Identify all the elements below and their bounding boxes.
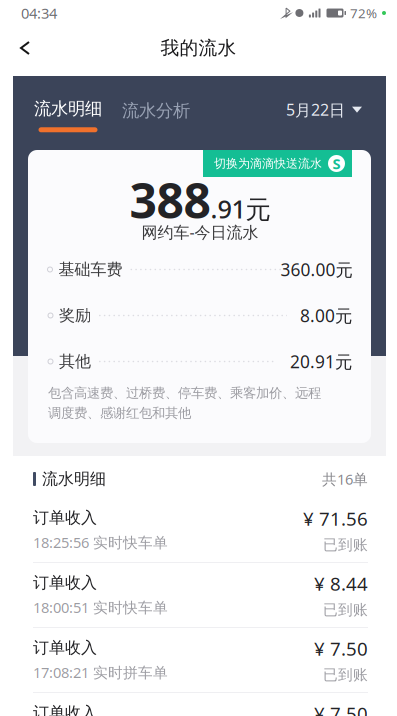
staticText: 共16单 <box>322 469 368 489</box>
button[interactable]: Back <box>0 26 50 70</box>
staticText: 我的流水 <box>160 36 236 59</box>
button[interactable]: 订单收入 <box>0 628 397 692</box>
staticText: ¥ 8.44 <box>314 571 368 596</box>
staticText: 流水分析 <box>122 100 190 121</box>
staticText: 388 <box>129 168 210 232</box>
staticText: 订单收入 <box>33 573 97 593</box>
staticText: 17:08:21 实时拼车单 <box>33 663 168 682</box>
staticText: 订单收入 <box>33 703 97 716</box>
staticText: 网约车-今日流水 <box>141 221 258 243</box>
staticText: 5月22日 <box>286 99 345 120</box>
button[interactable]: 5月22日 <box>286 99 362 132</box>
staticText: 切换为滴滴快送流水 <box>214 156 322 171</box>
staticText: 已到账 <box>323 536 368 554</box>
staticText: 04:34 <box>21 3 57 23</box>
staticText: S <box>332 154 340 173</box>
button[interactable]: 订单收入 <box>0 563 397 627</box>
button[interactable]: 订单收入 <box>0 693 397 716</box>
staticText: 订单收入 <box>33 508 97 528</box>
staticText: 360.00元 <box>280 258 352 281</box>
button[interactable]: 流水明细 <box>34 98 102 132</box>
staticText: 调度费、感谢红包和其他 <box>48 405 191 421</box>
button[interactable]: 切换为滴滴快送流水 <box>203 150 352 177</box>
staticText: 20.91元 <box>290 350 352 373</box>
button[interactable]: 流水分析 <box>122 100 190 132</box>
button[interactable]: 订单收入 <box>0 498 397 562</box>
staticText: 8.00元 <box>300 304 352 327</box>
staticText: 已到账 <box>323 601 368 619</box>
staticText: 18:25:56 实时快车单 <box>33 533 168 552</box>
staticText: ¥ 7.50 <box>314 701 368 716</box>
staticText: 72% <box>350 4 377 22</box>
staticText: 流水明细 <box>42 469 106 489</box>
staticText: 流水明细 <box>34 98 102 119</box>
staticText: 其他 <box>59 352 91 371</box>
staticText: 基础车费 <box>58 260 122 279</box>
staticText: 包含高速费、过桥费、停车费、乘客加价、远程 <box>48 385 321 401</box>
staticText: 奖励 <box>59 306 91 325</box>
staticText: ¥ 71.56 <box>303 506 368 531</box>
staticText: 订单收入 <box>33 638 97 658</box>
staticText: 已到账 <box>323 666 368 684</box>
staticText: .91元 <box>210 192 270 226</box>
staticText: ¥ 7.50 <box>314 636 368 661</box>
staticText: 18:00:51 实时快车单 <box>33 598 168 617</box>
